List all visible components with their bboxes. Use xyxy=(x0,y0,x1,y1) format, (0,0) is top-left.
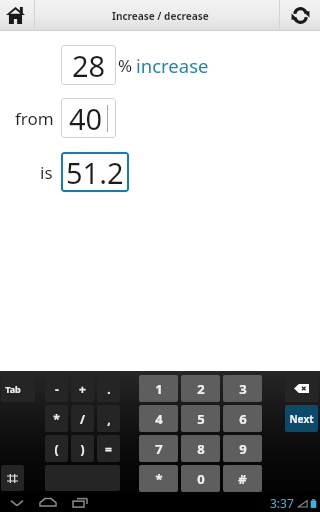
button[interactable]: * xyxy=(139,465,178,492)
button[interactable]: 7 xyxy=(139,435,178,462)
staticText: ( xyxy=(54,441,59,457)
staticText: % xyxy=(118,54,133,77)
button[interactable]: ( xyxy=(45,435,68,462)
button[interactable]: 1 xyxy=(139,375,178,402)
button[interactable]: Backspace xyxy=(285,375,318,402)
button[interactable]: ) xyxy=(71,435,94,462)
staticText: 3 xyxy=(239,380,247,398)
button[interactable]: - xyxy=(45,375,68,402)
button[interactable]: 51.2 xyxy=(61,152,129,192)
button[interactable]: = xyxy=(97,435,120,462)
button[interactable]: 4 xyxy=(139,405,178,432)
staticText: 2 xyxy=(197,380,205,398)
staticText: is xyxy=(40,161,53,184)
button[interactable]: 0 xyxy=(181,465,220,492)
staticText: 8 xyxy=(197,440,205,458)
button[interactable]: 3 xyxy=(223,375,262,402)
staticText: from xyxy=(15,107,54,130)
staticText: / xyxy=(80,411,85,427)
staticText: * xyxy=(155,470,163,488)
button[interactable]: Home xyxy=(0,0,34,31)
staticText: 6 xyxy=(239,410,247,428)
button[interactable]: 6 xyxy=(223,405,262,432)
button[interactable]: Switch keyboard xyxy=(1,465,24,491)
button[interactable]: 8 xyxy=(181,435,220,462)
staticText: 0 xyxy=(197,470,205,488)
staticText: 3:37 xyxy=(270,495,294,511)
button[interactable]: / xyxy=(71,405,94,432)
button[interactable]: Back xyxy=(4,493,30,512)
button[interactable]: increase xyxy=(136,53,209,78)
button[interactable]: 9 xyxy=(223,435,262,462)
staticText: 7 xyxy=(155,440,163,458)
staticText: + xyxy=(79,381,86,397)
button[interactable]: 40 xyxy=(61,98,116,138)
staticText: # xyxy=(238,470,247,488)
staticText: 5 xyxy=(197,410,205,428)
button[interactable]: Tab xyxy=(1,375,35,402)
button[interactable]: Recents xyxy=(67,493,93,512)
button[interactable]: + xyxy=(71,375,94,402)
button[interactable]: Next xyxy=(285,405,318,432)
button[interactable]: # xyxy=(223,465,262,492)
button[interactable]: * xyxy=(45,405,68,432)
staticText: = xyxy=(105,441,112,457)
staticText: ) xyxy=(80,441,85,457)
button[interactable]: , xyxy=(97,405,120,432)
staticText: Next xyxy=(289,412,314,426)
staticText: . xyxy=(107,381,111,397)
staticText: - xyxy=(55,381,59,397)
staticText: 4 xyxy=(155,410,163,428)
staticText: 40 xyxy=(69,99,103,138)
staticText: , xyxy=(107,411,111,427)
staticText: 9 xyxy=(239,440,247,458)
staticText: 51.2 xyxy=(66,153,124,192)
button[interactable]: Swap values xyxy=(280,0,320,31)
button[interactable]: 5 xyxy=(181,405,220,432)
button[interactable]: 2 xyxy=(181,375,220,402)
button[interactable]: . xyxy=(97,375,120,402)
staticText: increase xyxy=(136,53,209,78)
staticText: Increase / decrease xyxy=(112,9,209,23)
button[interactable]: Home xyxy=(35,493,61,512)
button[interactable]: 28 xyxy=(61,45,116,85)
staticText: * xyxy=(53,411,60,427)
staticText: 28 xyxy=(72,46,106,85)
staticText: 1 xyxy=(155,380,163,398)
staticText: Tab xyxy=(5,383,21,395)
